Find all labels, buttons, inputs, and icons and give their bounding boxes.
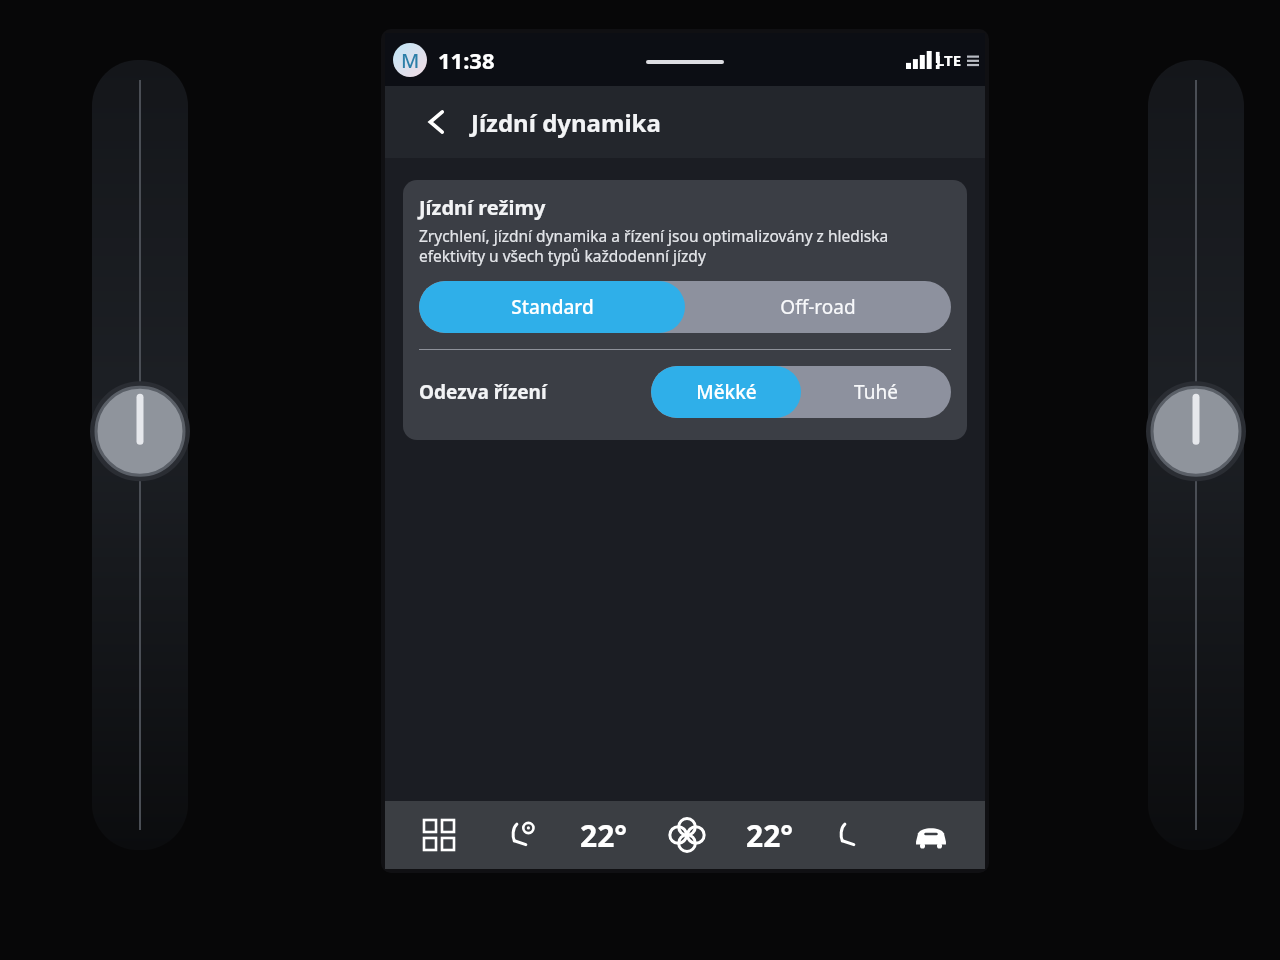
button[interactable]: Standard (419, 281, 685, 333)
staticText: Tuhé (854, 379, 898, 405)
button[interactable]: Fan (663, 811, 711, 859)
staticText: 11:38 (438, 45, 495, 75)
button[interactable]: Back (415, 100, 459, 144)
staticText: M (401, 47, 420, 74)
staticText: 22° (580, 815, 628, 856)
staticText: Měkké (696, 379, 757, 405)
staticText: 22° (746, 815, 794, 856)
staticText: LTE (936, 50, 962, 70)
button[interactable]: Tuhé (801, 366, 951, 418)
staticText: Jízdní dynamika (471, 106, 661, 139)
staticText: Jízdní režimy (419, 194, 546, 221)
button[interactable]: Off-road (685, 281, 951, 333)
staticText: Zrychlení, jízdní dynamika a řízení jsou… (419, 225, 951, 267)
button[interactable]: 22° (580, 811, 628, 859)
button[interactable]: Apps (415, 811, 463, 859)
button[interactable]: Driver seat heating (498, 811, 546, 859)
button[interactable]: Defrost (907, 811, 955, 859)
staticText: Standard (511, 294, 594, 320)
staticText: Off-road (780, 294, 856, 320)
button[interactable]: Profile (393, 43, 427, 77)
button[interactable]: 22° (746, 811, 794, 859)
staticText: Odezva řízení (419, 379, 547, 405)
button[interactable]: Měkké (651, 366, 801, 418)
button[interactable]: Passenger seat heating (828, 813, 872, 857)
